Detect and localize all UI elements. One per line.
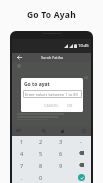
button[interactable]: 4 [12,147,31,159]
staticText: 8 [39,162,43,169]
staticText: 2 [39,138,43,145]
button[interactable]: 2 [31,136,51,147]
staticText: 4 [20,150,24,157]
button[interactable]: . [12,171,31,183]
staticText: 0 [39,174,43,181]
staticText: 7 [20,162,24,169]
button[interactable]: 3 [51,136,71,147]
button[interactable]: CANCEL [42,101,61,110]
button[interactable]: Stickers [58,127,66,135]
staticText: 9 [59,162,63,169]
staticText: 5 [39,150,43,157]
button[interactable]: OK [65,101,75,110]
other: Backspace [79,151,84,155]
button[interactable]: 0 [31,171,51,183]
staticText: 6 [59,150,63,157]
button[interactable]: - [71,136,91,147]
staticText: Go To Ayah [27,9,76,21]
button[interactable]: Backspace [71,159,91,171]
button[interactable]: Settings [80,127,88,135]
other: Backspace [79,163,84,167]
staticText: - [80,138,82,145]
staticText: Go to ayat [24,81,50,88]
staticText: . [21,174,23,181]
button[interactable]: 9 [51,159,71,171]
button[interactable]: 8 [31,159,51,171]
button[interactable]: 6 [51,147,71,159]
staticText: Surah Fatiha [41,55,64,60]
staticText: 3 [59,138,63,145]
button[interactable]: 1 [12,136,31,147]
other: Done [78,174,85,181]
staticText: Enter values between 1 to 83 [25,92,78,97]
staticText: GIF [16,129,22,133]
staticText: 1 [20,138,24,145]
button[interactable]: Done [71,171,91,183]
button[interactable]: Search [40,127,48,135]
button[interactable]: Backspace [71,147,91,159]
button[interactable]: 5 [31,147,51,159]
staticText: CANCEL [44,103,59,108]
staticText: 10:45 [78,43,89,49]
staticText: OK [67,103,73,108]
button[interactable]: 7 [12,159,31,171]
button[interactable]: Back [14,53,25,62]
